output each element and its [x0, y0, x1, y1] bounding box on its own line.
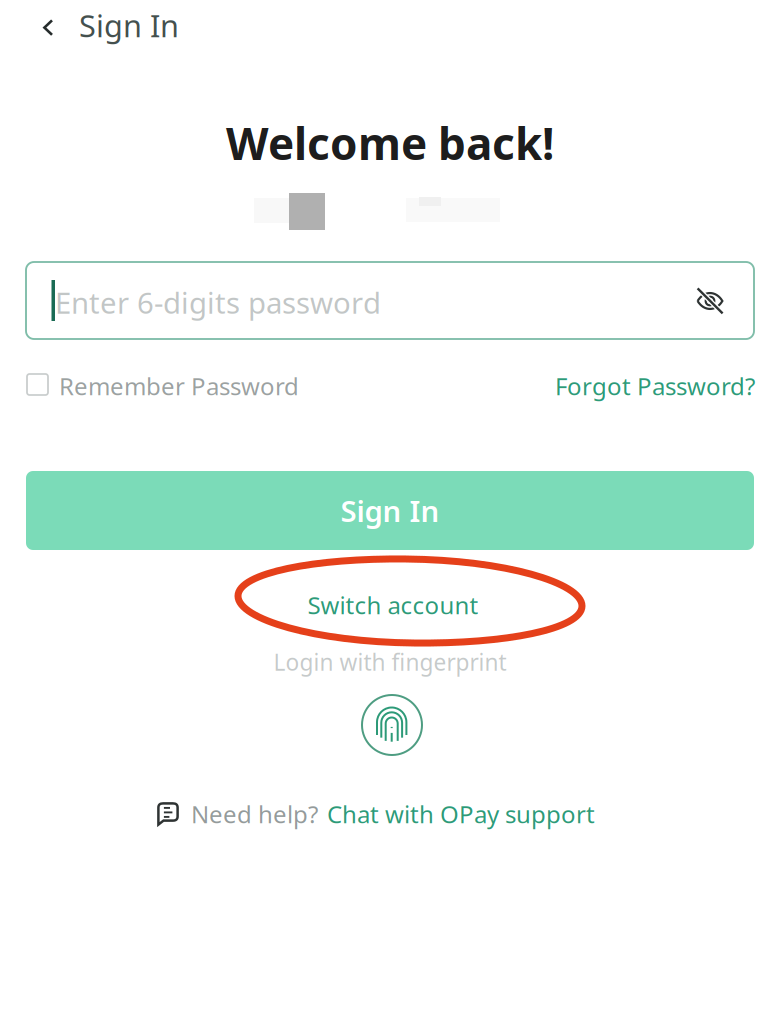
button[interactable]: Remember Password [27, 366, 317, 406]
staticText: Chat with OPay support [327, 798, 595, 830]
staticText: Sign In [79, 5, 179, 46]
staticText: Forgot Password? [555, 370, 755, 402]
staticText: Need help? [191, 798, 318, 830]
staticText: Remember Password [59, 370, 299, 402]
button[interactable]: Need help? [157, 793, 617, 835]
staticText: Switch account [307, 589, 478, 621]
button[interactable]: Forgot Password? [545, 366, 755, 406]
staticText: Login with fingerprint [273, 647, 506, 677]
button[interactable]: Sign In [0, 0, 200, 56]
staticText: Enter 6-digits password [55, 283, 381, 322]
staticText: Welcome back! [226, 114, 554, 172]
button[interactable]: Sign In [26, 471, 754, 550]
button[interactable]: Show password [682, 273, 738, 329]
staticText: Sign In [340, 491, 439, 530]
button[interactable]: Switch account [217, 576, 569, 634]
button[interactable]: Login with fingerprint [361, 694, 423, 756]
